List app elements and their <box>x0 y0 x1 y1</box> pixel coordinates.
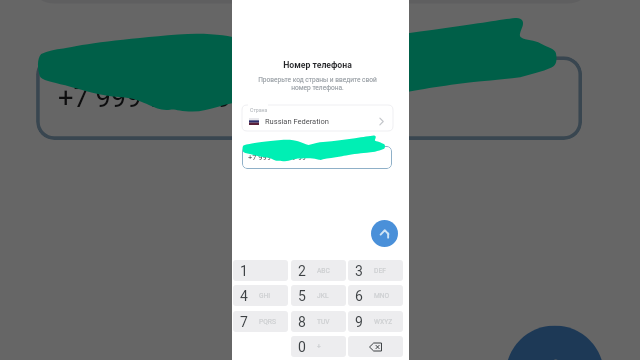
staticText: TUV <box>317 318 330 326</box>
staticText: + <box>317 343 321 351</box>
staticText: Страна <box>250 107 268 113</box>
staticText: JKL <box>317 292 329 300</box>
button[interactable]: 0 <box>291 336 346 357</box>
staticText: DEF <box>374 267 386 275</box>
button[interactable]: +7 999 999 99 99 <box>242 146 392 169</box>
staticText: +7 999 999 99 99 <box>248 153 307 162</box>
other: Backspace <box>348 336 403 357</box>
staticText: MNO <box>374 292 390 300</box>
staticText: 1 <box>240 263 248 279</box>
button[interactable]: +7 999 999 99 99 <box>36 56 582 140</box>
button[interactable]: 7 <box>233 311 288 332</box>
staticText: 8 <box>298 314 306 330</box>
staticText: Проверьте код страны и введите свой номе… <box>254 76 381 92</box>
button[interactable]: Страна <box>36 0 586 2</box>
staticText: PQRS <box>259 318 276 326</box>
staticText: GHI <box>259 292 271 300</box>
button[interactable]: 4 <box>233 285 288 306</box>
button[interactable]: 5 <box>291 285 346 306</box>
button[interactable]: 6 <box>348 285 403 306</box>
staticText: +7 999 999 99 99 <box>58 82 273 114</box>
button[interactable]: 8 <box>291 311 346 332</box>
staticText: WXYZ <box>374 318 393 326</box>
staticText: 3 <box>355 263 363 279</box>
staticText: 2 <box>298 263 306 279</box>
button[interactable]: 2 <box>291 260 346 281</box>
staticText: 6 <box>355 288 363 304</box>
button[interactable]: Backspace <box>348 336 403 357</box>
button[interactable]: 3 <box>348 260 403 281</box>
staticText: 9 <box>355 314 363 330</box>
staticText: Russian Federation <box>265 117 329 126</box>
staticText: 0 <box>298 339 306 355</box>
button[interactable]: 9 <box>348 311 403 332</box>
button[interactable]: Continue <box>506 326 604 360</box>
staticText: 7 <box>240 314 248 330</box>
staticText: 5 <box>298 288 306 304</box>
button[interactable]: Continue <box>371 220 398 247</box>
button[interactable]: Страна <box>242 105 393 131</box>
button[interactable]: 1 <box>233 260 288 281</box>
staticText: ABC <box>317 267 330 275</box>
staticText: Номер телефона <box>232 60 403 70</box>
staticText: 4 <box>240 288 248 304</box>
